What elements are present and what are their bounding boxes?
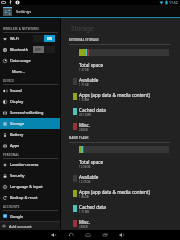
button[interactable]: Recent apps	[101, 230, 108, 240]
staticText: Backup & reset	[10, 195, 38, 200]
staticText: Available	[79, 77, 99, 83]
button[interactable]: Language & input	[0, 181, 60, 192]
staticText: Apps	[10, 143, 20, 148]
staticText: Bluetooth	[10, 47, 29, 52]
button[interactable]: Backup & reset	[0, 192, 60, 203]
button[interactable]: Storage	[0, 118, 60, 129]
button[interactable]: Data usage	[0, 55, 60, 66]
staticText: Location access	[10, 162, 39, 167]
staticText: Cached data	[79, 204, 106, 210]
staticText: Cached data	[79, 107, 106, 113]
staticText: 1.97GB	[79, 68, 89, 72]
staticText: Total space	[79, 159, 104, 165]
button[interactable]: Available	[61, 74, 180, 89]
staticText: 1.86GB	[79, 195, 89, 199]
staticText: Misc.	[79, 122, 90, 128]
button[interactable]: Sound	[0, 85, 60, 96]
staticText: INTERNAL STORAGE	[69, 38, 99, 42]
staticText: Apps (app data & media content)	[79, 189, 150, 195]
button[interactable]: Available	[61, 171, 180, 186]
button[interactable]: More...	[0, 66, 60, 77]
staticText: Language & input	[10, 184, 43, 189]
button[interactable]: ScreenshotSetting	[0, 107, 60, 118]
staticText: NAND FLASH	[69, 136, 89, 140]
staticText: Storage	[10, 121, 25, 126]
staticText: Wi-Fi	[10, 36, 19, 41]
button[interactable]: Back	[67, 230, 74, 240]
button[interactable]: Settings	[0, 5, 180, 17]
staticText: 11:52	[169, 0, 178, 5]
staticText: ON	[47, 37, 53, 41]
button[interactable]: Volume down	[50, 230, 57, 240]
staticText: Apps (app data & media content)	[79, 92, 150, 98]
staticText: Display	[10, 99, 24, 104]
staticText: ScreenshotSetting	[10, 110, 44, 115]
staticText: 12.94GB	[79, 165, 91, 169]
staticText: 45.12MB	[79, 113, 91, 117]
staticText: 1.71MB	[79, 210, 90, 214]
button[interactable]: Cached data	[61, 104, 180, 119]
button[interactable]: ON	[33, 35, 55, 42]
button[interactable]: Cached data	[61, 201, 180, 216]
staticText: Sound	[10, 88, 22, 93]
staticText: ACCOUNTS	[3, 205, 20, 209]
staticText: DEVICE	[3, 79, 14, 83]
staticText: Google	[10, 214, 24, 219]
staticText: Settings	[16, 9, 32, 14]
button[interactable]: Apps (app data & media content)	[61, 89, 180, 104]
button[interactable]: OFF	[33, 46, 55, 53]
staticText: More...	[12, 69, 25, 74]
staticText: 248KB	[79, 128, 88, 132]
button[interactable]: Location access	[0, 159, 60, 170]
button[interactable]: Wi-Fi	[0, 33, 60, 44]
button[interactable]: Misc.	[61, 216, 180, 231]
staticText: Storage	[71, 24, 94, 32]
button[interactable]: Misc.	[61, 119, 180, 134]
button[interactable]: Volume up	[118, 230, 125, 240]
button[interactable]: Apps (app data & media content)	[61, 186, 180, 201]
staticText: Total space	[79, 62, 104, 68]
staticText: OFF	[35, 48, 42, 52]
button[interactable]: Total space	[61, 59, 180, 74]
button[interactable]: Bluetooth	[0, 44, 60, 55]
staticText: Misc.	[79, 219, 90, 225]
button[interactable]: Battery	[0, 129, 60, 140]
staticText: PERSONAL	[3, 153, 20, 157]
staticText: 248KB	[79, 225, 88, 229]
staticText: 1.33MB	[79, 98, 90, 102]
staticText: Available	[79, 174, 99, 180]
button[interactable]: Google	[0, 211, 60, 221]
button[interactable]: Display	[0, 96, 60, 107]
button[interactable]: Add account	[0, 222, 60, 230]
button[interactable]: Security	[0, 170, 60, 181]
button[interactable]: Total space	[61, 156, 180, 171]
staticText: WIRELESS & NETWORKS	[3, 27, 39, 31]
staticText: Data usage	[10, 58, 31, 63]
staticText: Security	[10, 173, 25, 178]
button[interactable]: Home	[84, 230, 91, 240]
staticText: Add account	[9, 224, 32, 229]
staticText: Battery	[10, 132, 24, 137]
staticText: 12.35GB	[79, 180, 91, 184]
button[interactable]: Apps	[0, 140, 60, 151]
staticText: 1.71GB	[79, 83, 89, 87]
